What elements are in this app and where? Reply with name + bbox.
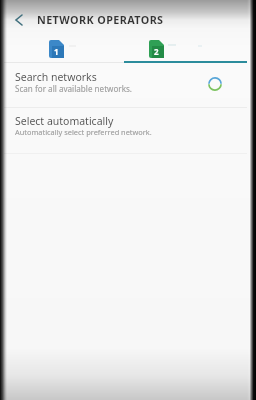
- button[interactable]: Select automatically: [4, 108, 247, 153]
- staticText: 1: [54, 46, 59, 57]
- staticText: Search networks: [15, 70, 97, 84]
- button[interactable]: [8, 10, 30, 30]
- staticText: Scan for all available networks.: [15, 83, 133, 94]
- staticText: 2: [154, 46, 159, 57]
- button[interactable]: 2: [124, 33, 247, 62]
- staticText: Automatically select preferred network.: [15, 127, 152, 137]
- button[interactable]: Search networks: [4, 64, 247, 107]
- staticText: Select automatically: [15, 114, 114, 128]
- staticText: NETWORK OPERATORS: [37, 12, 164, 27]
- button[interactable]: 1: [4, 33, 124, 62]
